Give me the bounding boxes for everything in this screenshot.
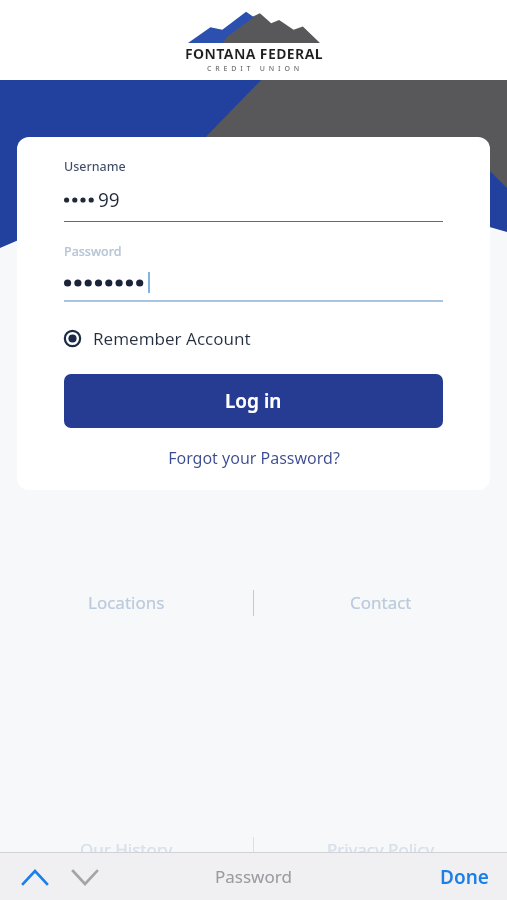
button[interactable]: Previous field [18,860,52,894]
staticText: Privacy Policy [327,838,435,861]
staticText: Username [64,158,126,175]
button[interactable]: Locations [0,585,253,620]
staticText: Password [64,243,122,260]
staticText: Log in [225,388,282,414]
button[interactable]: Remember Account [64,324,251,353]
staticText: Remember Account [93,327,251,350]
button[interactable]: Log in [64,374,443,428]
staticText: 11:56 AM [223,5,285,24]
staticText: Locations [88,591,165,614]
button[interactable]: Privacy Policy [254,832,507,867]
staticText: 99 [98,187,120,213]
staticText: FONTANA FEDERAL [185,44,323,63]
button[interactable]: Our History [0,832,253,867]
staticText: Contact [350,591,412,614]
button[interactable]: Contact [254,585,507,620]
staticText: Our History [80,838,173,861]
staticText: Forgot your Password? [168,447,340,469]
staticText: Password [215,865,292,888]
button[interactable]: Next field [68,860,102,894]
button[interactable]: Done [422,856,507,898]
staticText: C R E D I T U N I O N [207,64,301,74]
button[interactable]: Forgot your Password? [64,443,443,473]
staticText: Done [440,864,489,890]
